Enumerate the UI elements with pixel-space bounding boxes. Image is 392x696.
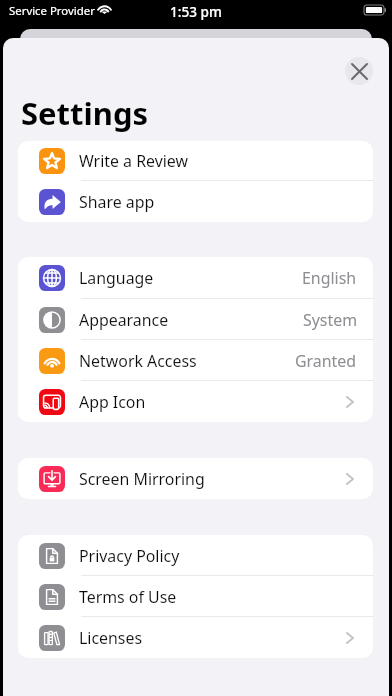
staticText: Language xyxy=(79,267,154,289)
button[interactable]: Network Access xyxy=(18,340,373,381)
staticText: Licenses xyxy=(79,627,143,649)
staticText: 1:53 pm xyxy=(170,2,222,21)
staticText: Share app xyxy=(79,191,155,213)
button[interactable]: Screen Mirroring xyxy=(18,458,373,499)
staticText: Service Provider xyxy=(9,3,95,19)
staticText: Write a Review xyxy=(79,150,188,172)
staticText: Privacy Policy xyxy=(79,545,180,567)
button[interactable]: Close xyxy=(345,57,373,85)
button[interactable]: Language xyxy=(18,257,373,299)
staticText: App Icon xyxy=(79,391,146,413)
button[interactable]: Privacy Policy xyxy=(18,535,373,576)
staticText: Screen Mirroring xyxy=(79,468,205,490)
button[interactable]: Appearance xyxy=(18,299,373,340)
button[interactable]: Licenses xyxy=(18,617,373,658)
staticText: Network Access xyxy=(79,350,197,372)
button[interactable]: Write a Review xyxy=(18,141,373,181)
staticText: Appearance xyxy=(79,309,169,331)
staticText: Settings xyxy=(21,92,149,134)
button[interactable]: Share app xyxy=(18,181,373,222)
button[interactable]: Terms of Use xyxy=(18,576,373,617)
button[interactable]: App Icon xyxy=(18,381,373,422)
staticText: System xyxy=(303,309,357,331)
staticText: Granted xyxy=(295,350,357,372)
staticText: Terms of Use xyxy=(79,586,177,608)
staticText: English xyxy=(302,267,357,289)
